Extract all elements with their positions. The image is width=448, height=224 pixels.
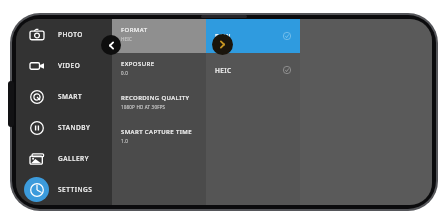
button[interactable]: Next option <box>212 34 233 55</box>
button[interactable]: HEIC <box>206 53 300 87</box>
staticText: 0.0 <box>121 70 128 76</box>
button[interactable]: STANDBY <box>16 112 112 143</box>
staticText: STANDBY <box>58 123 91 132</box>
button[interactable]: RAW <box>206 19 300 53</box>
staticText: SETTINGS <box>58 185 93 194</box>
button[interactable]: PHOTO <box>16 19 112 50</box>
staticText: EXPOSURE <box>121 60 155 68</box>
staticText: HEIC <box>121 36 133 42</box>
staticText: SMART <box>58 92 83 101</box>
button[interactable]: FORMAT <box>112 19 206 53</box>
button[interactable]: RECORDING QUALITY <box>112 87 206 121</box>
staticText: VIDEO <box>58 61 81 70</box>
staticText: RECORDING QUALITY <box>121 94 190 102</box>
staticText: GALLERY <box>58 154 89 163</box>
staticText: 1.0 <box>121 138 128 144</box>
button[interactable]: SMART <box>16 81 112 112</box>
button[interactable]: SMART CAPTURE TIME <box>112 121 206 155</box>
staticText: PHOTO <box>58 30 83 39</box>
button[interactable]: GALLERY <box>16 143 112 174</box>
button[interactable]: Previous option <box>101 35 121 55</box>
button[interactable]: SETTINGS <box>16 174 112 205</box>
staticText: RAW <box>215 32 231 41</box>
staticText: HEIC <box>215 66 232 75</box>
staticText: FORMAT <box>121 26 148 34</box>
staticText: SMART CAPTURE TIME <box>121 128 192 136</box>
button[interactable]: VIDEO <box>16 50 112 81</box>
staticText: 1080P HD AT 30FPS <box>121 104 166 110</box>
button[interactable]: EXPOSURE <box>112 53 206 87</box>
